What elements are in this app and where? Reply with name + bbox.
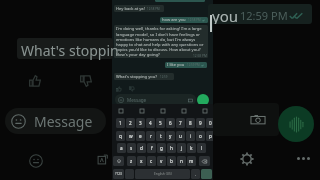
button[interactable]: Keyboard tool xyxy=(201,107,208,114)
button[interactable]: Hey back at ya! xyxy=(114,5,164,12)
button[interactable]: u xyxy=(176,131,185,141)
button[interactable]: 9 xyxy=(196,118,205,128)
staticText: i xyxy=(190,133,192,139)
button[interactable]: Send xyxy=(197,94,209,106)
button[interactable]: r xyxy=(146,131,155,141)
button[interactable]: k xyxy=(187,143,196,153)
staticText: 12:59 PM xyxy=(187,63,200,67)
button[interactable]: a xyxy=(117,143,126,153)
staticText: t xyxy=(160,133,162,139)
button[interactable]: Like xyxy=(116,86,122,92)
staticText: I'm doing well, thanks for asking! I'm a… xyxy=(116,26,206,57)
button[interactable]: 5 xyxy=(156,118,165,128)
button[interactable]: w xyxy=(126,131,135,141)
button[interactable]: y xyxy=(166,131,175,141)
button[interactable]: Message xyxy=(115,94,196,105)
staticText: how are you xyxy=(162,17,186,23)
button[interactable]: ?123 xyxy=(113,169,124,179)
button[interactable]: o xyxy=(196,131,205,141)
staticText: 7 xyxy=(179,120,182,126)
button[interactable]: Camera xyxy=(250,112,266,128)
staticText: What's stoppin xyxy=(21,41,119,60)
button[interactable]: 7 xyxy=(176,118,185,128)
button[interactable]: m xyxy=(187,156,196,166)
staticText: y xyxy=(169,133,172,139)
staticText: Message xyxy=(127,97,147,103)
staticText: e xyxy=(139,133,142,139)
button[interactable]: e xyxy=(136,131,145,141)
button[interactable] xyxy=(17,38,113,59)
button[interactable]: I'm doing well, thanks for asking! I'm a… xyxy=(114,25,208,58)
button[interactable]: t xyxy=(156,131,165,141)
staticText: k xyxy=(190,145,193,151)
staticText: ?123 xyxy=(115,172,122,176)
button[interactable]: q xyxy=(116,131,125,141)
button[interactable]: b xyxy=(167,156,176,166)
button[interactable]: Voice assistant xyxy=(278,106,314,142)
button[interactable]: Dislike xyxy=(129,86,135,92)
button[interactable]: 0 xyxy=(206,118,215,128)
staticText: 6 xyxy=(169,120,172,126)
button[interactable]: Shift xyxy=(113,156,124,166)
button[interactable]: s xyxy=(127,143,136,153)
button[interactable]: v xyxy=(157,156,166,166)
staticText: s xyxy=(130,145,133,151)
staticText: h xyxy=(170,145,173,151)
button[interactable]: z xyxy=(127,156,136,166)
button[interactable]: Message xyxy=(5,108,106,134)
button[interactable]: Emoji xyxy=(125,169,134,179)
staticText: 3 xyxy=(139,120,142,126)
button[interactable]: 6 xyxy=(166,118,175,128)
staticText: 1 xyxy=(119,120,122,126)
staticText: 2 xyxy=(129,120,132,126)
button[interactable]: d xyxy=(137,143,146,153)
button[interactable]: g xyxy=(157,143,166,153)
button[interactable]: 2 xyxy=(126,118,135,128)
button[interactable]: 3 xyxy=(136,118,145,128)
button[interactable]: . xyxy=(191,169,200,179)
staticText: a xyxy=(120,145,123,151)
button[interactable]: English (US) xyxy=(135,169,190,179)
button[interactable]: h xyxy=(167,143,176,153)
button[interactable]: how are you xyxy=(160,17,208,23)
button[interactable]: Keyboard tool xyxy=(138,107,145,114)
button[interactable]: n xyxy=(177,156,186,166)
button[interactable]: Enter xyxy=(201,169,212,179)
button[interactable]: Keyboard tool xyxy=(180,107,187,114)
button[interactable]: l xyxy=(197,143,206,153)
staticText: 12:58 PM xyxy=(193,54,207,58)
button[interactable]: I like you xyxy=(165,62,207,68)
button[interactable]: Stickers xyxy=(97,154,108,165)
staticText: o xyxy=(199,133,202,139)
button[interactable]: 4 xyxy=(146,118,155,128)
staticText: j xyxy=(181,145,183,151)
staticText: u xyxy=(179,133,182,139)
staticText: 9 xyxy=(199,120,202,126)
staticText: 4 xyxy=(149,120,152,126)
staticText: f xyxy=(151,145,153,151)
staticText: 0 xyxy=(209,120,212,126)
staticText: I like you xyxy=(167,62,185,68)
button[interactable]: 1 xyxy=(116,118,125,128)
button[interactable]: Emoji xyxy=(29,154,43,168)
button[interactable]: c xyxy=(147,156,156,166)
button[interactable]: j xyxy=(177,143,186,153)
button[interactable]: x xyxy=(137,156,146,166)
button[interactable]: i xyxy=(186,131,195,141)
button[interactable]: Keyboard tool xyxy=(117,107,124,114)
button[interactable]: Backspace xyxy=(199,156,210,166)
staticText: c xyxy=(150,158,153,164)
button[interactable]: Keyboard tool xyxy=(159,107,166,114)
staticText: 12:59 PM xyxy=(240,8,288,23)
button[interactable]: More options xyxy=(297,155,310,161)
staticText: q xyxy=(119,133,122,139)
button[interactable]: Like xyxy=(28,74,42,88)
button[interactable]: Dislike xyxy=(79,74,93,88)
staticText: 5 xyxy=(159,120,162,126)
button[interactable]: Settings xyxy=(240,152,254,166)
button[interactable]: What's stopping you? xyxy=(114,73,174,80)
button[interactable]: you xyxy=(208,4,312,24)
button[interactable]: f xyxy=(147,143,156,153)
button[interactable]: 8 xyxy=(186,118,195,128)
button[interactable]: p xyxy=(206,131,215,141)
